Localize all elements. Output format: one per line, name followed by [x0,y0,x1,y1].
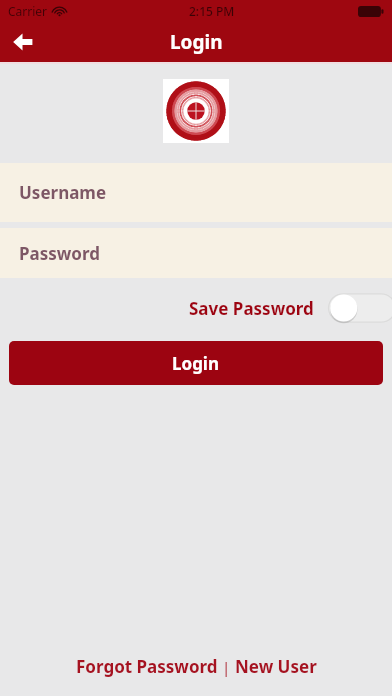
button[interactable]: Login [9,341,383,385]
staticText: Save Password [189,297,314,320]
staticText: 2:15 PM [189,3,235,19]
button[interactable]: Username [0,163,392,222]
staticText: New User [235,655,317,678]
staticText: Password [19,242,100,265]
staticText: Login [172,352,220,375]
button[interactable]: New User [235,655,317,678]
staticText: Carrier [8,3,48,19]
button[interactable]: Save Password toggle [328,292,392,324]
button[interactable]: Password [0,228,392,278]
staticText: Login [170,29,223,55]
button[interactable]: Back [0,22,44,62]
staticText: Username [19,181,107,204]
staticText: Forgot Password [76,655,218,678]
button[interactable]: Forgot Password [76,655,218,678]
staticText: | [218,657,235,677]
